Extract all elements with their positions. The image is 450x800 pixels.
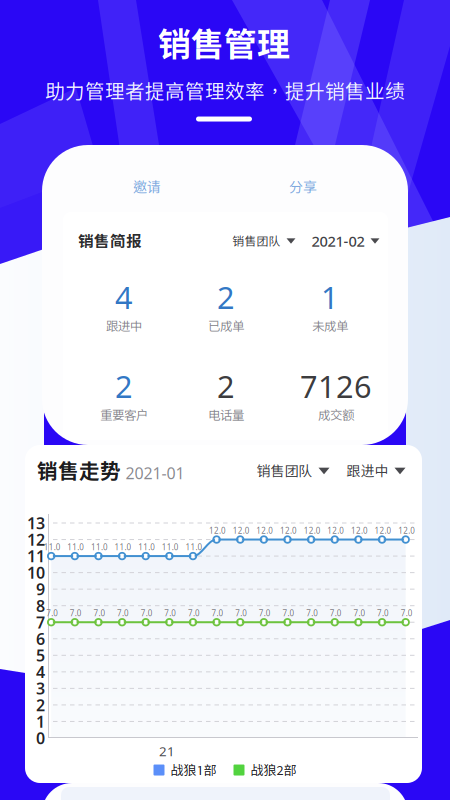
staticText: 9: [36, 578, 45, 600]
staticText: 7.0: [212, 608, 224, 618]
button[interactable]: 销售团队: [230, 229, 297, 253]
staticText: 7.0: [188, 608, 200, 618]
staticText: 成交额: [318, 408, 354, 422]
button[interactable]: 邀请: [103, 172, 191, 202]
staticText: 3: [36, 678, 45, 699]
staticText: 分享: [289, 179, 317, 195]
staticText: 12.0: [280, 525, 297, 536]
staticText: 4: [115, 277, 133, 317]
staticText: 11.0: [44, 542, 61, 552]
staticText: 2: [115, 366, 133, 406]
staticText: 跟进中: [346, 463, 388, 479]
staticText: 11: [27, 545, 45, 567]
button[interactable]: 分享: [259, 172, 347, 202]
staticText: 13: [27, 512, 45, 534]
staticText: 销售简报: [78, 232, 142, 250]
staticText: 4: [36, 661, 45, 682]
staticText: 12.0: [233, 525, 250, 536]
staticText: 12.0: [374, 525, 391, 536]
staticText: 11.0: [162, 542, 179, 552]
staticText: 销售团队: [232, 234, 280, 248]
staticText: 1: [36, 711, 45, 732]
staticText: 7.0: [306, 608, 318, 618]
staticText: 6: [36, 628, 45, 649]
staticText: 12.0: [304, 525, 321, 536]
staticText: 7.0: [401, 608, 413, 618]
staticText: 7.0: [259, 608, 271, 618]
staticText: 1: [321, 277, 339, 317]
staticText: 12.0: [398, 525, 415, 536]
staticText: 7.0: [235, 608, 247, 618]
button[interactable]: 2021-02: [309, 226, 381, 256]
staticText: 0: [36, 727, 45, 749]
staticText: 战狼2部: [250, 762, 296, 778]
staticText: 电话量: [208, 408, 244, 422]
staticText: 12.0: [256, 525, 273, 536]
staticText: 12: [27, 529, 45, 550]
staticText: 11.0: [138, 542, 155, 552]
staticText: 战狼1部: [170, 762, 216, 778]
staticText: 8: [36, 595, 45, 616]
staticText: 已成单: [208, 319, 244, 333]
staticText: 未成单: [312, 319, 348, 333]
button[interactable]: 跟进中: [344, 458, 407, 484]
staticText: 7.0: [330, 608, 342, 618]
staticText: 11.0: [67, 542, 84, 552]
staticText: 销售管理: [158, 24, 290, 63]
staticText: 2021-01: [125, 462, 184, 484]
staticText: 销售走势: [37, 459, 121, 483]
button[interactable]: 销售团队: [254, 458, 331, 484]
staticText: 2: [217, 366, 235, 406]
staticText: 12.0: [351, 525, 368, 536]
staticText: 7.0: [70, 608, 82, 618]
staticText: 邀请: [133, 179, 161, 195]
staticText: 销售团队: [256, 463, 312, 479]
staticText: 7.0: [282, 608, 294, 618]
staticText: 12.0: [209, 525, 226, 536]
staticText: 11.0: [91, 542, 108, 552]
staticText: 12.0: [327, 525, 344, 536]
staticText: 重要客户: [100, 408, 148, 422]
staticText: 7: [36, 612, 45, 633]
staticText: 10: [27, 562, 45, 583]
staticText: 2021-02: [311, 231, 364, 251]
staticText: 11.0: [185, 542, 202, 552]
staticText: 助力管理者提高管理效率，提升销售业绩: [45, 79, 405, 102]
staticText: 7.0: [377, 608, 389, 618]
staticText: 2: [36, 694, 45, 715]
staticText: 7.0: [353, 608, 365, 618]
staticText: 2: [217, 277, 235, 317]
staticText: 7.0: [141, 608, 153, 618]
staticText: 7.0: [46, 608, 58, 618]
staticText: 7.0: [164, 608, 176, 618]
staticText: 7.0: [117, 608, 129, 618]
staticText: 7126: [300, 366, 372, 406]
staticText: 21: [159, 742, 175, 760]
staticText: 7.0: [93, 608, 105, 618]
staticText: 5: [36, 645, 45, 666]
staticText: 11.0: [115, 542, 132, 552]
staticText: 跟进中: [106, 319, 142, 333]
